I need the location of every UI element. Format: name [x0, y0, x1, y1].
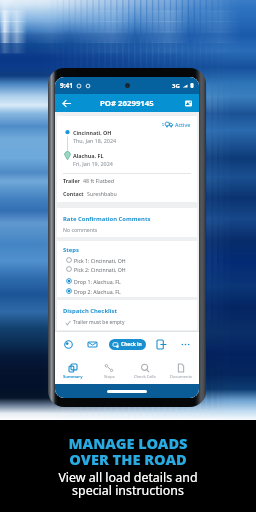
button[interactable]: More [178, 337, 193, 352]
staticText: Dispatch Checklist [63, 307, 118, 315]
staticText: Active [175, 121, 191, 128]
staticText: Documents [170, 374, 193, 380]
staticText: Trailer must be empty [73, 319, 125, 326]
button[interactable]: Stops [91, 358, 127, 385]
staticText: MANAGE LOADS OVER THE ROAD [68, 433, 188, 469]
button[interactable]: Email [85, 337, 100, 352]
button[interactable]: Back [59, 96, 73, 110]
button[interactable]: Pick 2: Cincinnati, OH [66, 265, 191, 273]
staticText: Pick 1: Cincinnati, OH [74, 257, 126, 264]
staticText: Steps [63, 246, 79, 254]
staticText: Drop 1: Alachua, FL [74, 278, 121, 285]
staticText: Cincinnati, OH [73, 129, 112, 136]
button[interactable]: Drop 1: Alachua, FL [66, 277, 191, 285]
staticText: Alachua, FL [73, 152, 104, 159]
staticText: No comments [63, 226, 98, 233]
staticText: Sureshbabu [87, 190, 117, 197]
staticText: Check Calls [134, 374, 156, 380]
button[interactable]: Export [154, 337, 169, 352]
button[interactable]: Documents [163, 358, 199, 385]
button[interactable]: Images [181, 96, 195, 110]
staticText: Stops [104, 374, 115, 380]
staticText: PO# 26299145 [100, 98, 154, 109]
staticText: View all load details and special instru… [58, 469, 198, 499]
staticText: 3G [172, 82, 180, 90]
button[interactable]: Check Calls [127, 358, 163, 385]
button[interactable]: Check in [109, 339, 146, 350]
staticText: Trailer [63, 177, 80, 184]
staticText: 48 ft Flatbed [83, 177, 115, 184]
staticText: 9:41 [60, 81, 73, 90]
staticText: Check in [121, 341, 142, 348]
button[interactable]: Call [61, 337, 76, 352]
button[interactable]: Drop 2: Alachua, FL [66, 287, 191, 295]
staticText: Summary [63, 374, 83, 380]
button[interactable]: Summary [55, 358, 91, 385]
staticText: Rate Confirmation Comments [63, 215, 151, 223]
staticText: Thu, Jan 18, 2024 [73, 137, 117, 144]
staticText: Pick 2: Cincinnati, OH [74, 266, 126, 273]
staticText: Drop 2: Alachua, FL [74, 288, 121, 295]
button[interactable]: Pick 1: Cincinnati, OH [66, 256, 191, 264]
staticText: Fri, Jan 19, 2024 [73, 160, 113, 167]
staticText: Contact [63, 190, 84, 197]
